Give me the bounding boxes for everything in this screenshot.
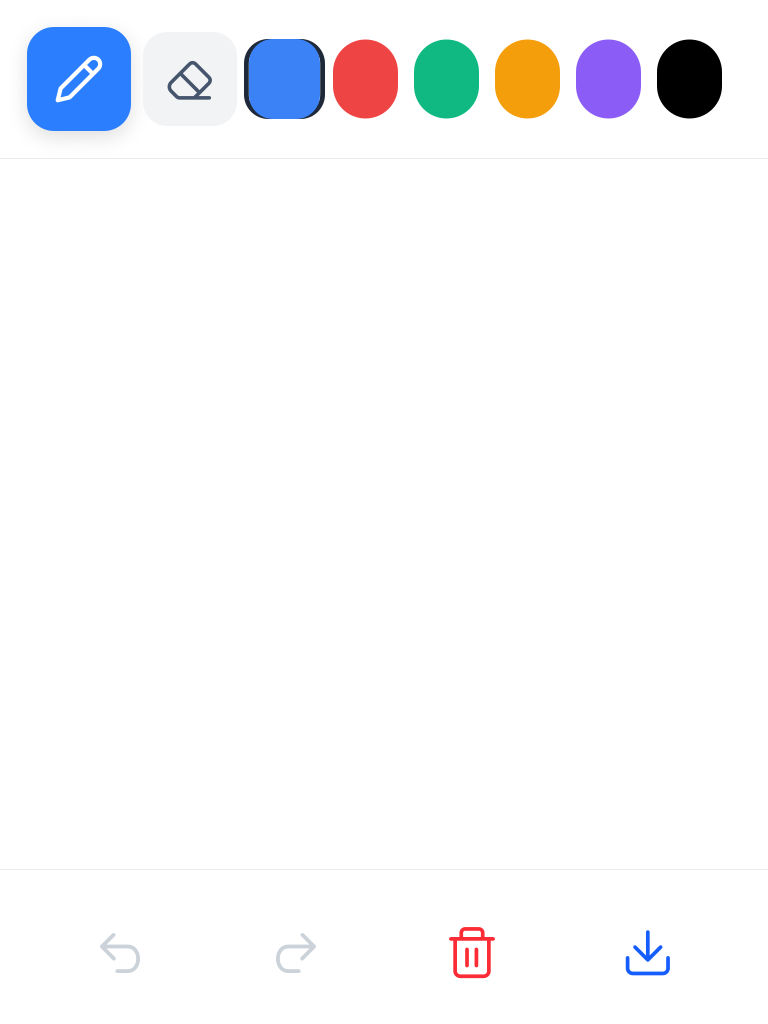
button[interactable] — [325, 27, 406, 131]
button[interactable]: Clear canvas — [416, 897, 528, 1009]
button[interactable] — [406, 27, 487, 131]
button[interactable] — [244, 27, 325, 131]
button[interactable]: Undo — [64, 897, 176, 1009]
button[interactable] — [568, 27, 649, 131]
button[interactable]: Pen — [27, 27, 131, 131]
button[interactable] — [487, 27, 568, 131]
button[interactable]: Redo — [240, 897, 352, 1009]
button[interactable]: Eraser — [143, 32, 237, 126]
button[interactable]: Save drawing — [592, 897, 704, 1009]
button[interactable] — [649, 27, 730, 131]
